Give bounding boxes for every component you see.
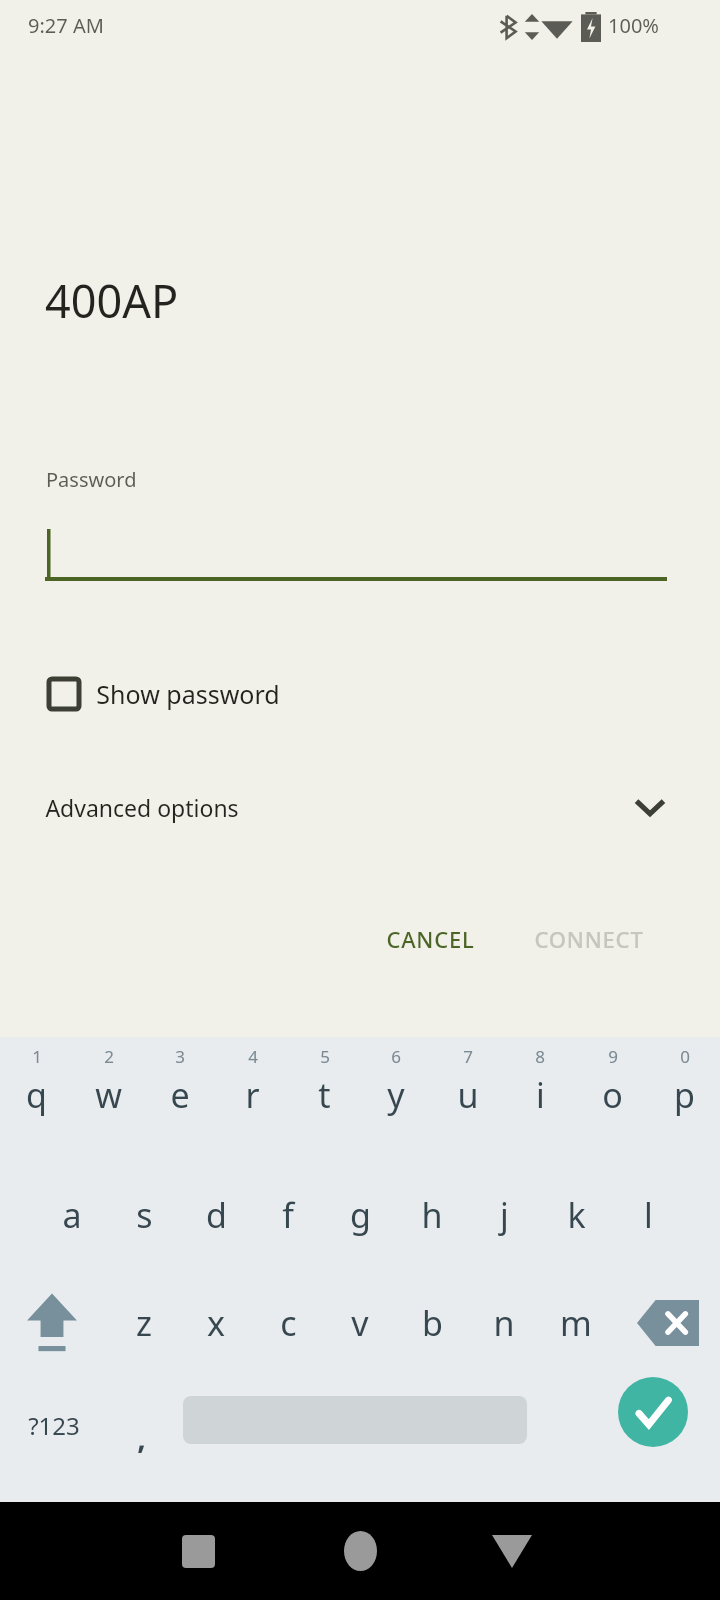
staticText: 4 [248,1045,258,1068]
staticText: s [136,1192,153,1238]
staticText: 8 [535,1045,545,1068]
button[interactable]: s [108,1167,180,1263]
staticText: 0 [680,1045,690,1068]
button[interactable]: Home [312,1502,408,1600]
staticText: v [351,1300,369,1346]
button[interactable]: l [612,1167,684,1263]
staticText: j [500,1192,509,1238]
staticText: b [422,1300,443,1346]
staticText: 6 [391,1045,401,1068]
button[interactable]: n [468,1275,540,1371]
button[interactable]: Password input [45,512,667,582]
button[interactable]: Backspace [620,1275,716,1371]
staticText: 400AP [45,270,179,331]
button[interactable]: g [324,1167,396,1263]
staticText: x [207,1300,225,1346]
button[interactable]: Enter [618,1377,688,1447]
staticText: u [457,1072,479,1118]
staticText: w [95,1072,122,1118]
button[interactable]: , [110,1377,172,1473]
button[interactable]: CONNECT [512,908,666,970]
staticText: g [350,1192,371,1238]
staticText: 100% [608,12,659,39]
staticText: , [137,1417,146,1458]
staticText: n [493,1300,515,1346]
staticText: Password [46,466,137,493]
staticText: 5 [320,1045,330,1068]
staticText: y [387,1072,405,1118]
button[interactable]: z [108,1275,180,1371]
staticText: 3 [175,1045,185,1068]
button[interactable]: Back [464,1502,560,1600]
staticText: r [245,1072,260,1118]
button[interactable]: h [396,1167,468,1263]
staticText: z [136,1300,152,1346]
staticText: p [674,1072,695,1118]
button[interactable]: c [252,1275,324,1371]
button[interactable]: Recents [150,1502,246,1600]
staticText: t [318,1072,331,1118]
staticText: l [644,1192,653,1238]
button[interactable]: x [180,1275,252,1371]
button[interactable]: ?123 [4,1377,104,1473]
staticText: 7 [463,1045,473,1068]
button[interactable]: Shift [4,1275,100,1371]
button[interactable]: 0 [648,1045,720,1157]
button[interactable]: 4 [216,1045,288,1157]
staticText: f [282,1192,294,1238]
staticText: h [421,1192,443,1238]
button[interactable]: b [396,1275,468,1371]
staticText: 9:27 AM [28,12,104,39]
button[interactable]: 2 [72,1045,144,1157]
staticText: 2 [104,1045,114,1068]
button[interactable]: v [324,1275,396,1371]
staticText: a [62,1192,82,1238]
staticText: Advanced options [45,792,239,823]
button[interactable]: k [540,1167,612,1263]
staticText: o [602,1072,623,1118]
button[interactable]: 8 [504,1045,576,1157]
staticText: k [567,1192,586,1238]
button[interactable]: j [468,1167,540,1263]
button[interactable]: m [540,1275,612,1371]
button[interactable]: 5 [288,1045,360,1157]
staticText: 9 [608,1045,618,1068]
staticText: ?123 [28,1409,80,1442]
staticText: i [536,1072,545,1118]
button[interactable]: 9 [576,1045,648,1157]
button[interactable]: Show password [45,668,280,720]
staticText: c [280,1300,297,1346]
staticText: 1 [32,1045,42,1068]
button[interactable]: CANCEL [364,908,497,970]
staticText: q [26,1072,47,1118]
button[interactable]: f [252,1167,324,1263]
button[interactable]: 1 [0,1045,72,1157]
button[interactable]: a [36,1167,108,1263]
button[interactable]: 7 [432,1045,504,1157]
button[interactable]: 6 [360,1045,432,1157]
other: Expand advanced options [633,790,667,824]
button[interactable]: Advanced options [45,782,667,832]
staticText: Show password [96,677,280,711]
button[interactable]: d [180,1167,252,1263]
staticText: CANCEL [386,924,475,954]
staticText: d [206,1192,227,1238]
button[interactable]: 3 [144,1045,216,1157]
staticText: e [170,1072,190,1118]
staticText: m [560,1300,592,1346]
staticText: CONNECT [534,924,644,954]
